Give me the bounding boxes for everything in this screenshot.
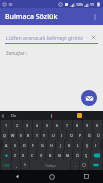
staticText: E bbox=[20, 133, 22, 138]
button[interactable]: K bbox=[65, 140, 73, 150]
staticText: Sonuçlar : bbox=[6, 50, 28, 56]
button[interactable]: Send mail bbox=[81, 90, 97, 106]
button[interactable]: B bbox=[46, 150, 54, 160]
staticText: , bbox=[16, 163, 17, 168]
staticText: Ç bbox=[85, 153, 88, 158]
button[interactable]: N bbox=[55, 150, 63, 160]
button[interactable]: Back bbox=[0, 170, 35, 183]
button[interactable]: R bbox=[25, 130, 32, 140]
staticText: F bbox=[32, 143, 34, 148]
button[interactable]: Home bbox=[35, 170, 69, 183]
staticText: S bbox=[14, 143, 16, 148]
staticText: M bbox=[66, 153, 70, 158]
button[interactable]: L bbox=[74, 140, 82, 150]
staticText: De bbox=[11, 113, 17, 119]
button[interactable]: 4 bbox=[33, 120, 42, 130]
button[interactable]: 9 bbox=[83, 120, 92, 130]
button[interactable]: Recent apps bbox=[69, 170, 103, 183]
button[interactable]: W bbox=[9, 130, 16, 140]
staticText: 1 bbox=[5, 123, 8, 128]
staticText: 0 bbox=[96, 123, 99, 128]
button[interactable]: Q bbox=[1, 130, 8, 140]
staticText: 2 bbox=[16, 123, 19, 128]
staticText: X bbox=[22, 153, 25, 158]
staticText: Y bbox=[43, 133, 46, 138]
button[interactable]: F bbox=[29, 140, 37, 150]
button[interactable]: Period bbox=[71, 160, 79, 170]
staticText: Türkçe bbox=[45, 163, 56, 168]
button[interactable]: Ş bbox=[83, 140, 91, 150]
button[interactable]: 0 bbox=[93, 120, 102, 130]
staticText: V bbox=[40, 153, 43, 158]
staticText: K bbox=[68, 143, 71, 148]
button[interactable]: 1 bbox=[1, 120, 11, 130]
staticText: Ü bbox=[97, 133, 100, 138]
button[interactable]: Emoji bbox=[80, 160, 88, 170]
button[interactable]: A bbox=[3, 140, 10, 150]
staticText: Q bbox=[3, 133, 6, 138]
button[interactable]: 2 bbox=[12, 120, 22, 130]
staticText: R bbox=[27, 133, 30, 138]
button[interactable]: More options bbox=[87, 9, 103, 25]
button[interactable]: G bbox=[38, 140, 46, 150]
button[interactable]: T bbox=[33, 130, 40, 140]
button[interactable]: E bbox=[17, 130, 24, 140]
button[interactable]: 123 bbox=[1, 160, 11, 170]
button[interactable]: H bbox=[47, 140, 55, 150]
staticText: D bbox=[23, 143, 26, 148]
button[interactable]: Z bbox=[12, 150, 19, 160]
button[interactable]: Stickers bbox=[77, 113, 82, 118]
staticText: Z bbox=[14, 153, 17, 158]
staticText: N bbox=[58, 153, 61, 158]
button[interactable]: D bbox=[20, 140, 28, 150]
staticText: G bbox=[41, 143, 44, 148]
button[interactable]: Ç bbox=[82, 150, 90, 160]
button[interactable]: 3 bbox=[23, 120, 32, 130]
staticText: 5 bbox=[46, 123, 49, 128]
button[interactable]: X bbox=[20, 150, 27, 160]
staticText: Ş bbox=[86, 143, 88, 148]
staticText: W bbox=[11, 133, 15, 138]
staticText: L bbox=[77, 143, 79, 148]
button[interactable]: 5 bbox=[43, 120, 52, 130]
button[interactable]: Lütfen aranacak kelimeyi giriniz bbox=[5, 32, 98, 43]
staticText: O bbox=[70, 133, 73, 138]
button[interactable]: P bbox=[76, 130, 84, 140]
button[interactable]: Y bbox=[41, 130, 48, 140]
button[interactable]: 8 bbox=[73, 120, 82, 130]
staticText: Bulmaca Sözlük bbox=[5, 12, 58, 22]
button[interactable]: I bbox=[58, 130, 66, 140]
staticText: I bbox=[95, 143, 97, 148]
staticText: B bbox=[49, 153, 52, 158]
button[interactable]: Space bbox=[30, 160, 70, 170]
button[interactable]: C bbox=[28, 150, 36, 160]
staticText: 11 bbox=[90, 2, 95, 7]
staticText: 4 bbox=[36, 123, 39, 128]
button[interactable]: S bbox=[11, 140, 19, 150]
button[interactable]: U bbox=[49, 130, 57, 140]
button[interactable]: M bbox=[64, 150, 72, 160]
button[interactable]: V bbox=[37, 150, 45, 160]
staticText: 6 bbox=[56, 123, 59, 128]
staticText: A bbox=[5, 143, 8, 148]
button[interactable]: Backspace bbox=[91, 150, 102, 160]
button[interactable]: I bbox=[92, 140, 100, 150]
button[interactable]: 7 bbox=[63, 120, 72, 130]
button[interactable]: Ü bbox=[94, 130, 102, 140]
button[interactable]: Clear text bbox=[89, 33, 98, 42]
button[interactable]: Enter bbox=[89, 160, 102, 170]
button[interactable]: Ğ bbox=[85, 130, 93, 140]
staticText: 7 bbox=[66, 123, 69, 128]
button[interactable]: Ö bbox=[73, 150, 81, 160]
staticText: I bbox=[61, 133, 63, 138]
staticText: . bbox=[75, 163, 76, 168]
staticText: 3 bbox=[26, 123, 29, 128]
button[interactable]: J bbox=[56, 140, 64, 150]
button[interactable]: Comma bbox=[12, 160, 20, 170]
button[interactable]: O bbox=[67, 130, 75, 140]
button[interactable]: Shift bbox=[1, 150, 11, 160]
staticText: H bbox=[50, 143, 53, 148]
button[interactable]: Voice input bbox=[21, 160, 29, 170]
button[interactable]: 6 bbox=[53, 120, 62, 130]
staticText: 8 bbox=[76, 123, 79, 128]
